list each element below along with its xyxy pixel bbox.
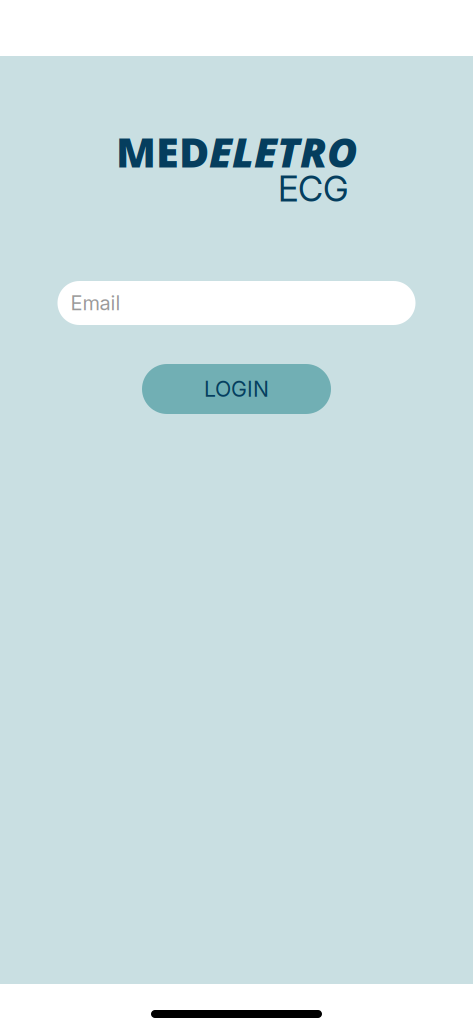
button[interactable]: Email — [57, 281, 415, 325]
staticText: Email — [70, 291, 120, 315]
staticText: ELETRO — [209, 124, 357, 179]
button[interactable]: LOGIN — [142, 364, 331, 414]
staticText: ECG — [278, 168, 349, 210]
staticText: MED — [116, 124, 209, 179]
staticText: LOGIN — [204, 376, 269, 402]
